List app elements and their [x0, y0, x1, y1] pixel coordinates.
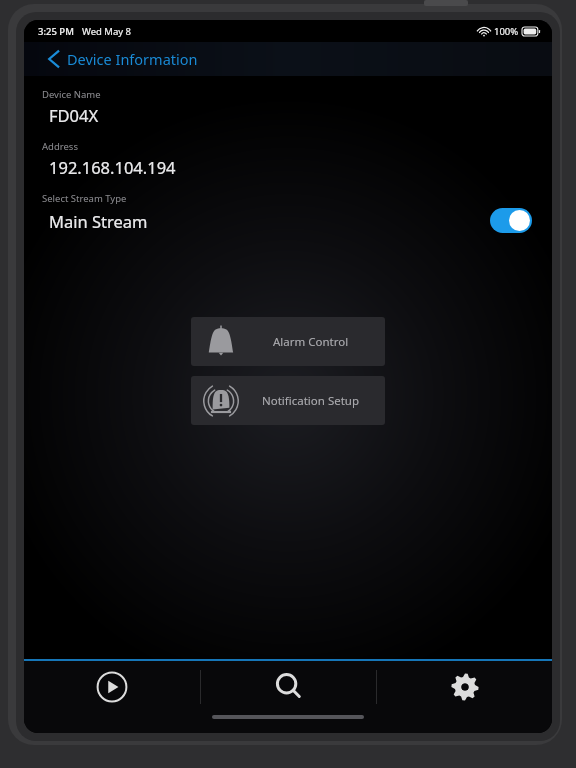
staticText: 3:25 PM — [38, 25, 74, 38]
staticText: Alarm Control — [273, 334, 349, 350]
staticText: Wed May 8 — [82, 25, 132, 38]
button[interactable]: Play — [24, 661, 200, 713]
staticText: FD04X — [49, 104, 99, 126]
staticText: Main Stream — [49, 210, 148, 232]
staticText: Address — [42, 140, 78, 153]
staticText: Select Stream Type — [42, 192, 127, 205]
button[interactable]: Back to previous screen — [24, 42, 552, 76]
staticText: 192.168.104.194 — [49, 156, 176, 178]
button[interactable]: Alarm Control — [191, 317, 385, 366]
button[interactable]: Search — [201, 661, 376, 713]
button[interactable]: Settings — [377, 661, 552, 713]
staticText: Device Information — [67, 49, 198, 69]
staticText: Notification Setup — [262, 393, 360, 409]
button[interactable]: Notification Setup — [191, 376, 385, 425]
staticText: Device Name — [42, 88, 101, 101]
staticText: 100% — [494, 25, 519, 38]
button[interactable]: Main Stream toggle, on — [490, 208, 532, 233]
